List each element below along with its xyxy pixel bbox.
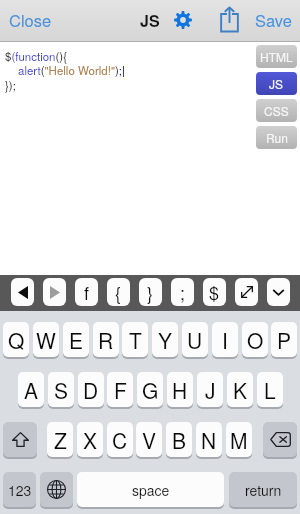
- staticText: X: [83, 425, 98, 455]
- staticText: D: [83, 375, 99, 405]
- button[interactable]: J: [197, 372, 223, 407]
- button[interactable]: Settings: [173, 10, 192, 29]
- staticText: R: [98, 325, 114, 355]
- staticText: Z: [54, 425, 67, 455]
- staticText: JS: [140, 9, 160, 32]
- button[interactable]: F: [107, 372, 133, 407]
- staticText: N: [201, 425, 217, 455]
- button[interactable]: D: [78, 372, 104, 407]
- staticText: T: [129, 325, 142, 355]
- button[interactable]: Hide keyboard: [267, 278, 290, 306]
- staticText: J: [205, 375, 216, 405]
- staticText: L: [264, 375, 276, 405]
- staticText: });: [5, 77, 16, 93]
- staticText: V: [142, 425, 157, 455]
- staticText: space: [132, 480, 170, 500]
- staticText: G: [142, 375, 159, 405]
- staticText: Q: [8, 325, 25, 355]
- button[interactable]: return: [229, 472, 297, 507]
- button[interactable]: B: [166, 422, 192, 457]
- button[interactable]: T: [122, 322, 148, 357]
- button[interactable]: }: [139, 278, 162, 306]
- button[interactable]: space: [77, 472, 224, 507]
- button[interactable]: $: [203, 278, 226, 306]
- button[interactable]: P: [271, 322, 297, 357]
- button[interactable]: A: [18, 372, 44, 407]
- button[interactable]: O: [242, 322, 268, 357]
- staticText: ;: [180, 279, 186, 305]
- staticText: HTML: [260, 48, 293, 65]
- button[interactable]: Next: [43, 278, 66, 306]
- button[interactable]: I: [212, 322, 238, 357]
- staticText: Save: [255, 8, 292, 32]
- button[interactable]: Z: [47, 422, 73, 457]
- button[interactable]: 123: [3, 472, 36, 507]
- staticText: $(function(){: [5, 48, 67, 64]
- staticText: K: [233, 375, 248, 405]
- staticText: B: [172, 425, 187, 455]
- staticText: U: [187, 325, 203, 355]
- button[interactable]: {: [107, 278, 130, 306]
- staticText: return: [245, 480, 282, 500]
- staticText: P: [277, 325, 292, 355]
- other: Expand: [240, 285, 254, 299]
- button[interactable]: S: [48, 372, 74, 407]
- button[interactable]: V: [136, 422, 162, 457]
- other: Shift: [12, 432, 29, 447]
- button[interactable]: Close: [9, 8, 52, 32]
- button[interactable]: Save: [255, 8, 292, 32]
- button[interactable]: Run: [256, 126, 297, 149]
- button[interactable]: U: [182, 322, 208, 357]
- button[interactable]: Share: [219, 6, 239, 33]
- staticText: A: [24, 375, 39, 405]
- staticText: I: [222, 325, 228, 355]
- staticText: }: [147, 279, 154, 305]
- button[interactable]: K: [227, 372, 253, 407]
- other: Previous: [18, 286, 28, 299]
- staticText: C: [112, 425, 128, 455]
- button[interactable]: L: [257, 372, 283, 407]
- button[interactable]: HTML: [256, 45, 297, 68]
- button[interactable]: X: [77, 422, 103, 457]
- button[interactable]: Q: [3, 322, 29, 357]
- button[interactable]: JS: [256, 72, 297, 95]
- button[interactable]: G: [137, 372, 163, 407]
- staticText: S: [54, 375, 69, 405]
- other: Backspace: [270, 432, 291, 447]
- button[interactable]: R: [93, 322, 119, 357]
- button[interactable]: f: [75, 278, 98, 306]
- staticText: W: [36, 325, 56, 355]
- button[interactable]: CSS: [256, 99, 297, 122]
- button[interactable]: Previous: [11, 278, 34, 306]
- button[interactable]: ;: [171, 278, 194, 306]
- staticText: alert("Hello World!");: [18, 62, 123, 78]
- button[interactable]: E: [63, 322, 89, 357]
- other: Next keyboard: [47, 480, 66, 499]
- other: Next: [50, 286, 60, 299]
- staticText: CSS: [264, 102, 289, 119]
- staticText: O: [247, 325, 264, 355]
- button[interactable]: H: [167, 372, 193, 407]
- button[interactable]: Y: [152, 322, 178, 357]
- staticText: JS: [269, 75, 284, 92]
- staticText: {: [115, 279, 122, 305]
- staticText: Close: [9, 8, 52, 32]
- staticText: E: [69, 325, 84, 355]
- button[interactable]: M: [226, 422, 252, 457]
- staticText: Y: [158, 325, 173, 355]
- button[interactable]: Expand: [235, 278, 258, 306]
- button[interactable]: C: [107, 422, 133, 457]
- staticText: F: [114, 375, 127, 405]
- staticText: Run: [266, 129, 288, 146]
- button[interactable]: Backspace: [263, 422, 297, 457]
- button[interactable]: Next keyboard: [40, 472, 73, 507]
- button[interactable]: W: [33, 322, 59, 357]
- other: Hide keyboard: [272, 286, 285, 299]
- staticText: H: [172, 375, 188, 405]
- staticText: 123: [8, 480, 32, 500]
- staticText: f: [84, 279, 90, 305]
- staticText: M: [230, 425, 248, 455]
- button[interactable]: Shift: [3, 422, 37, 457]
- button[interactable]: N: [196, 422, 222, 457]
- staticText: $: [209, 279, 220, 305]
